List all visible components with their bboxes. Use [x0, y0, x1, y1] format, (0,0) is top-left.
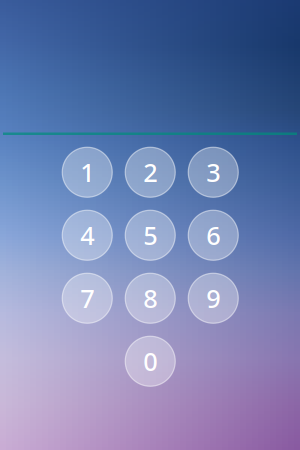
button[interactable]: 7: [56, 267, 119, 330]
staticText: 9: [206, 281, 220, 315]
button[interactable]: 0: [119, 330, 182, 393]
staticText: 7: [80, 281, 94, 315]
button[interactable]: 5: [119, 204, 182, 267]
staticText: 4: [80, 218, 94, 252]
staticText: 3: [206, 155, 220, 189]
staticText: 1: [80, 155, 94, 189]
button[interactable]: 9: [182, 267, 245, 330]
button[interactable]: 8: [119, 267, 182, 330]
staticText: 8: [143, 281, 157, 315]
button[interactable]: 4: [56, 204, 119, 267]
staticText: 6: [206, 218, 220, 252]
staticText: 2: [143, 155, 157, 189]
button[interactable]: 2: [119, 141, 182, 204]
button[interactable]: 6: [182, 204, 245, 267]
staticText: 0: [143, 344, 157, 378]
staticText: 5: [143, 218, 157, 252]
button[interactable]: 1: [56, 141, 119, 204]
button[interactable]: 3: [182, 141, 245, 204]
